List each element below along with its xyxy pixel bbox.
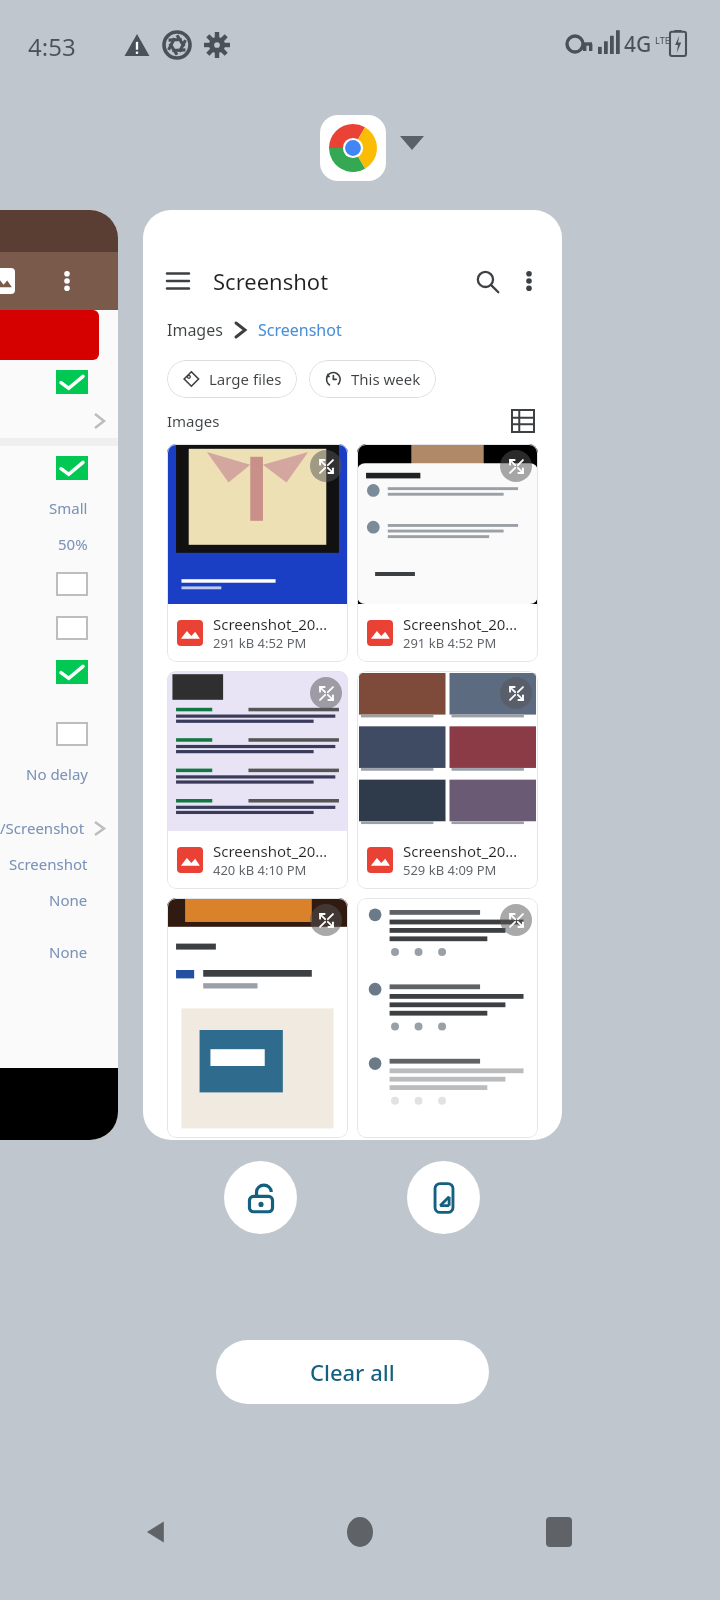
button[interactable]: Screenshot: [258, 319, 342, 341]
button[interactable]: ommended): [0, 210, 118, 1140]
button[interactable]: Large files: [167, 360, 297, 398]
button[interactable]: Expand preview: [310, 677, 342, 709]
staticText: No delay: [26, 764, 88, 784]
button[interactable]: None: [0, 882, 118, 918]
staticText: ../Screenshot: [0, 818, 85, 838]
button[interactable]: Expand preview: [310, 904, 342, 936]
staticText: 291 kB 4:52 PM: [403, 634, 497, 652]
staticText: 420 kB 4:10 PM: [213, 861, 307, 879]
button[interactable]: Open navigation menu: [157, 260, 199, 302]
staticText: Screenshot_20…: [403, 841, 518, 861]
staticText: 50%: [58, 534, 88, 554]
button[interactable]: [0, 650, 118, 694]
button[interactable]: Expand preview: [357, 671, 538, 889]
staticText: 291 kB 4:52 PM: [213, 634, 307, 652]
button[interactable]: Expand preview: [310, 450, 342, 482]
button[interactable]: Recent apps: [529, 1502, 589, 1562]
button[interactable]: ommended): [0, 360, 118, 404]
staticText: Screenshot_20…: [213, 841, 328, 861]
button[interactable]: Expand preview: [167, 671, 348, 889]
button[interactable]: Chrome app icon: [320, 115, 386, 181]
button[interactable]: 50%: [0, 526, 118, 562]
button[interactable]: [0, 606, 118, 650]
button[interactable]: Expand preview: [357, 898, 538, 1138]
button[interactable]: Images: [167, 319, 223, 341]
button[interactable]: Screenshot: [0, 846, 118, 882]
button[interactable]: [0, 712, 118, 756]
button[interactable]: Expand preview: [500, 904, 532, 936]
staticText: None: [49, 890, 88, 910]
staticText: Small: [49, 498, 88, 518]
button[interactable]: Expand preview: [500, 450, 532, 482]
button[interactable]: Switch to list view: [506, 404, 540, 438]
button[interactable]: Small: [0, 490, 118, 526]
staticText: Images: [167, 411, 220, 431]
button[interactable]: Expand preview: [167, 898, 348, 1138]
staticText: 4:53: [28, 30, 76, 63]
button[interactable]: ../Screenshot: [0, 810, 118, 846]
staticText: Screenshot_20…: [213, 614, 328, 634]
button[interactable]: No delay: [0, 756, 118, 792]
button[interactable]: Lock task: [224, 1161, 297, 1234]
staticText: Screenshot: [213, 266, 329, 296]
button[interactable]: Home: [330, 1502, 390, 1562]
staticText: Large files: [209, 369, 282, 389]
button[interactable]: More options: [508, 260, 550, 302]
staticText: LTE: [655, 34, 670, 46]
staticText: This week: [351, 369, 421, 389]
button[interactable]: Back: [126, 1502, 186, 1562]
button[interactable]: Open navigation menu: [143, 210, 562, 1140]
button[interactable]: [0, 562, 118, 606]
button[interactable]: App options: [400, 136, 424, 150]
staticText: Screenshot_20…: [403, 614, 518, 634]
button[interactable]: [0, 446, 118, 490]
button[interactable]: Clear all: [216, 1340, 489, 1404]
button[interactable]: Expand preview: [167, 444, 348, 662]
staticText: None: [49, 942, 88, 962]
staticText: 4G: [624, 30, 652, 59]
button[interactable]: This week: [309, 360, 436, 398]
button[interactable]: Expand preview: [500, 677, 532, 709]
staticText: Clear all: [310, 1357, 395, 1387]
staticText: Screenshot: [9, 854, 88, 874]
staticText: 529 kB 4:09 PM: [403, 861, 497, 879]
button[interactable]: Split screen: [407, 1161, 480, 1234]
button[interactable]: Expand preview: [357, 444, 538, 662]
button[interactable]: None: [0, 934, 118, 970]
button[interactable]: Search: [466, 260, 508, 302]
